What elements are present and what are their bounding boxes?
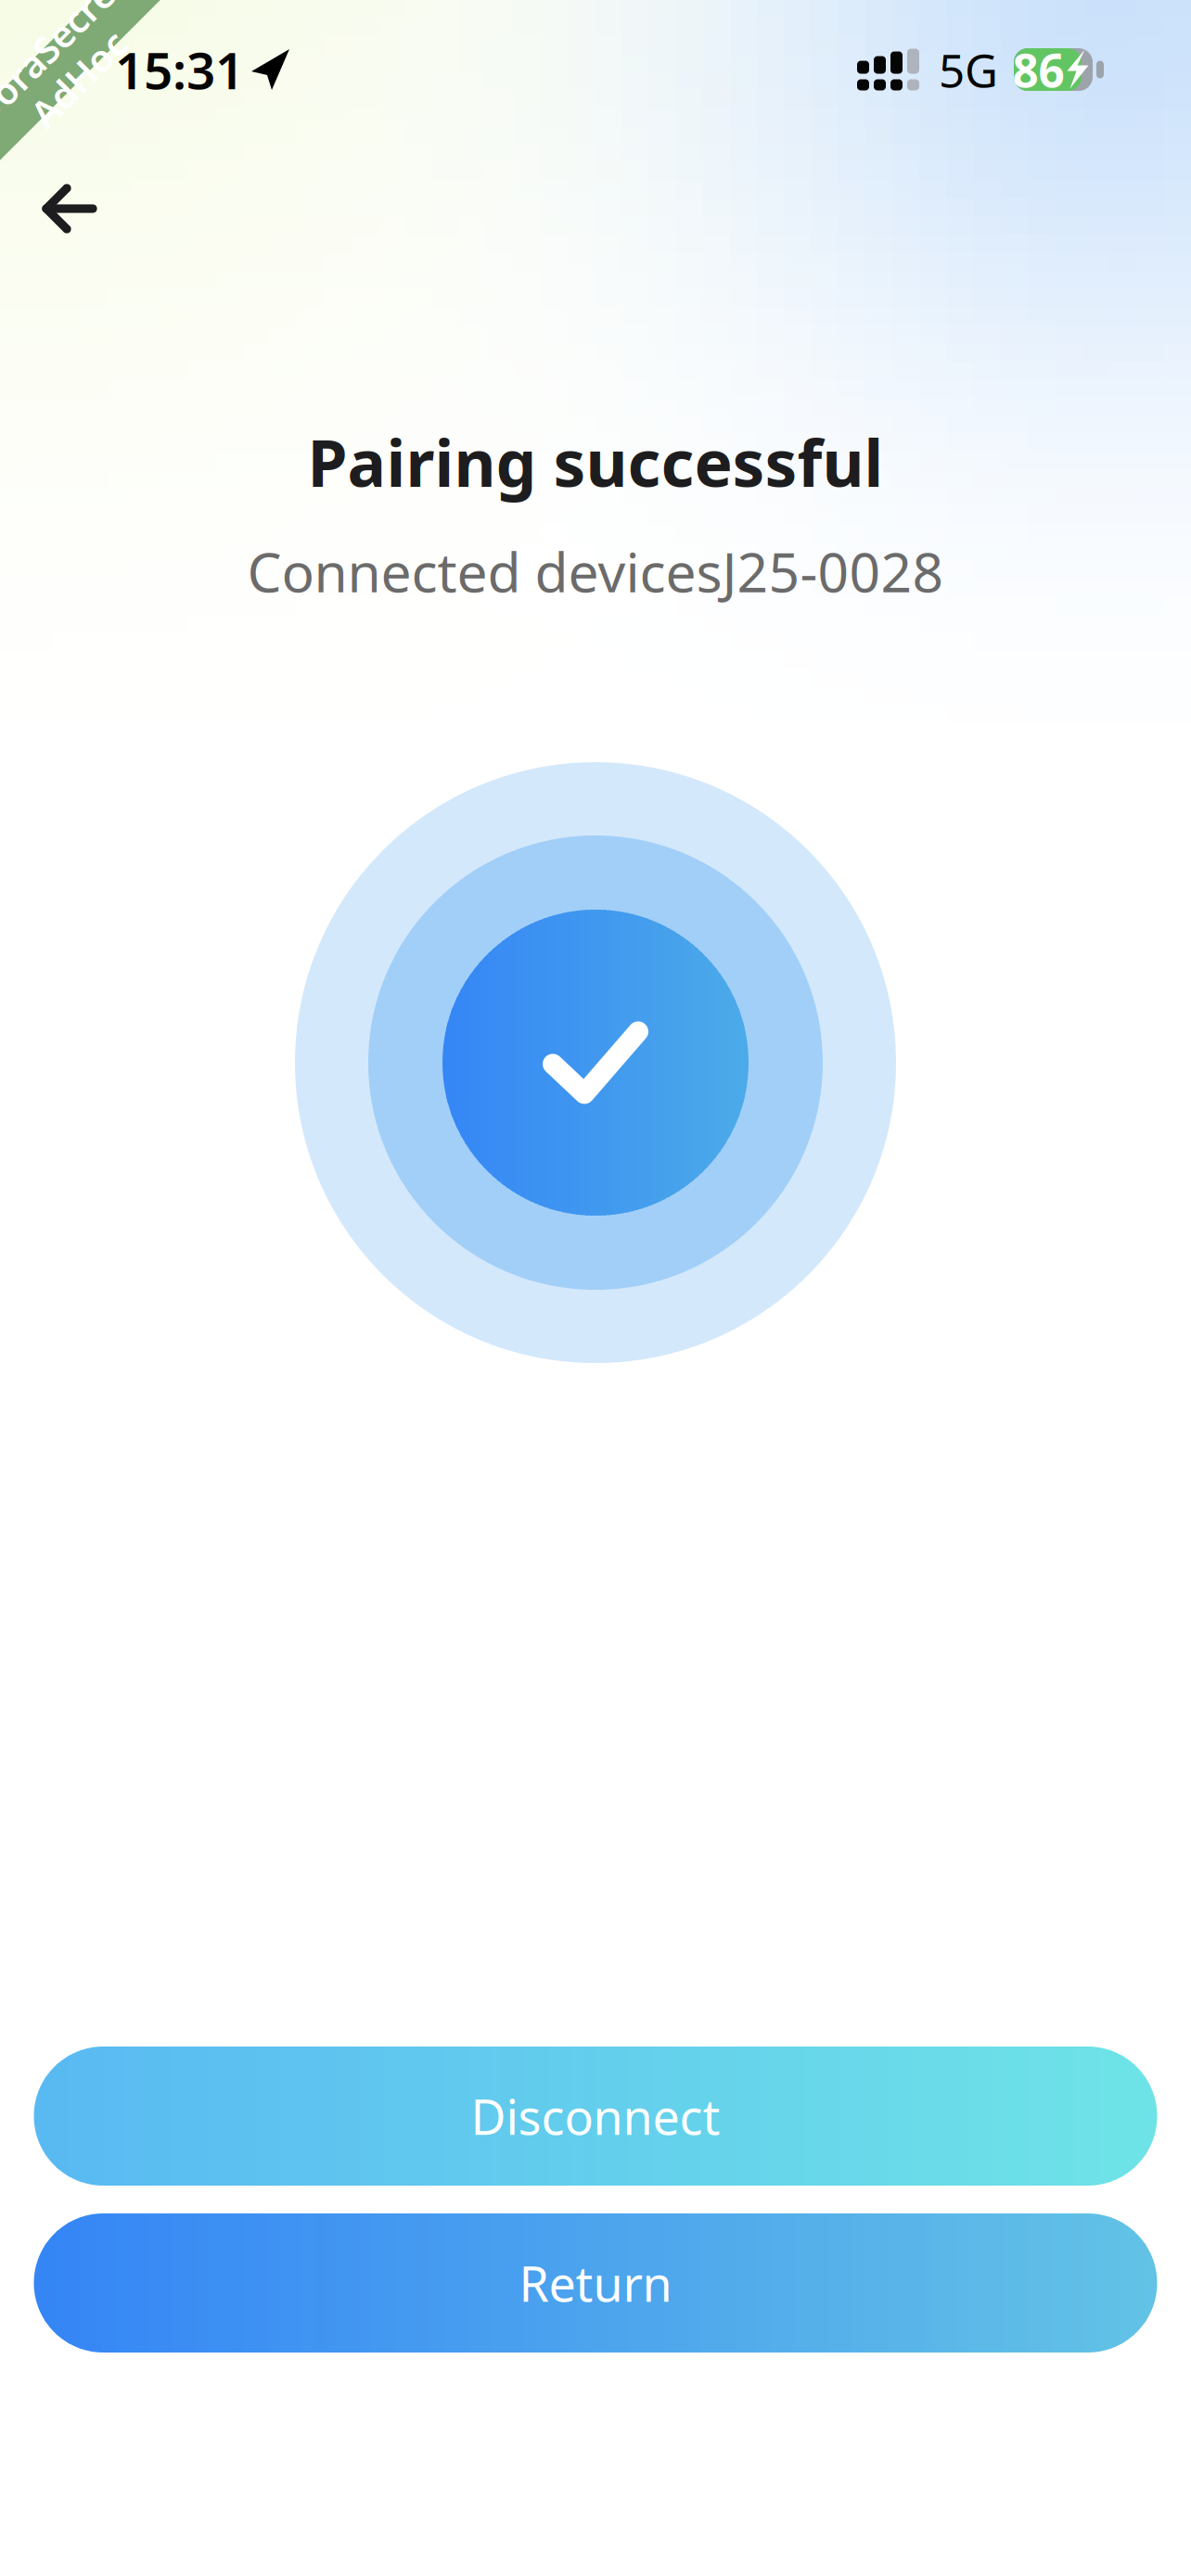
staticText: Return [519,2251,672,2315]
button[interactable]: Disconnect [34,2047,1157,2186]
staticText: 5G [939,39,998,100]
staticText: AdHoc [4,60,122,110]
button[interactable]: Return [34,2213,1157,2353]
staticText: Connected devicesJ25-0028 [247,535,944,607]
button[interactable]: Back [0,139,122,232]
staticText: Disconnect [471,2084,720,2148]
staticText: 86 [1012,39,1064,100]
staticText: Pairing successful [307,419,884,505]
staticText: DoraSecret [0,17,163,66]
staticText: 15:31 [115,36,244,103]
